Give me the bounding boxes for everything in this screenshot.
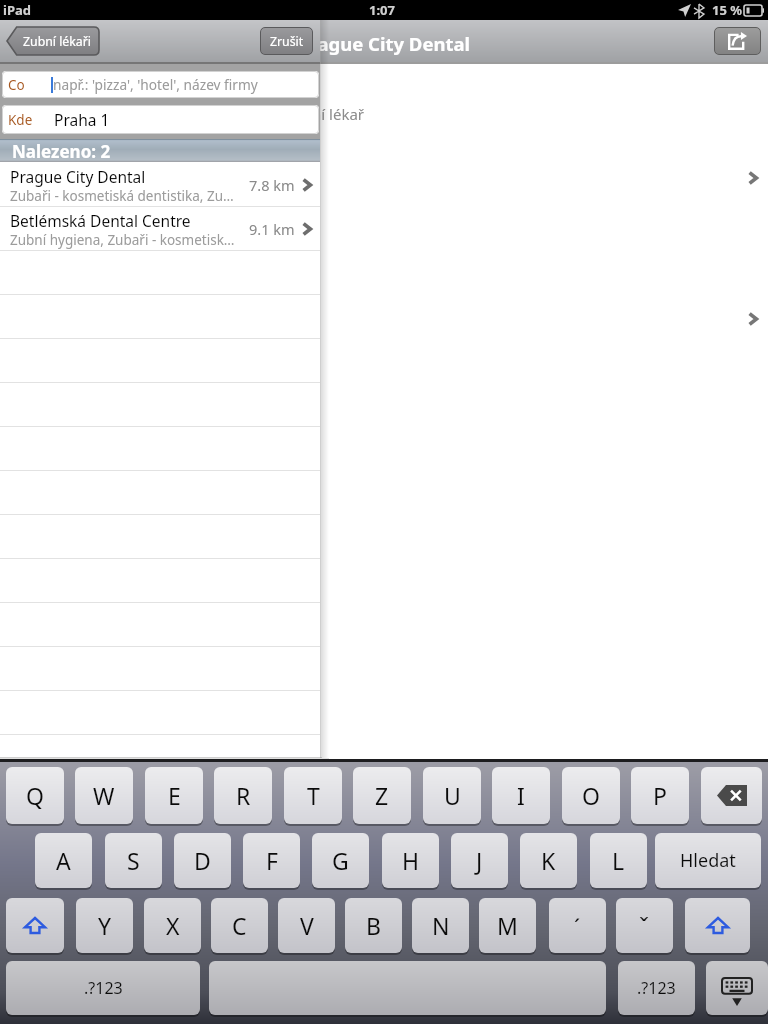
- button[interactable]: W: [75, 767, 133, 824]
- button[interactable]: D: [174, 833, 231, 888]
- staticText: iPad: [3, 1, 31, 19]
- button[interactable]: A: [35, 833, 92, 888]
- button[interactable]: Y: [76, 898, 133, 953]
- button[interactable]: N: [412, 898, 469, 953]
- button[interactable]: B: [345, 898, 402, 953]
- button[interactable]: .?123: [6, 961, 200, 1015]
- button[interactable]: Shift: [685, 898, 750, 953]
- staticText: ˇ: [639, 909, 650, 942]
- button[interactable]: [0, 251, 320, 295]
- button[interactable]: [0, 603, 320, 647]
- button[interactable]: F: [243, 833, 300, 888]
- button[interactable]: Hide keyboard: [706, 961, 768, 1015]
- button[interactable]: Z: [353, 767, 411, 824]
- button[interactable]: Betlémská Dental Centre: [0, 207, 320, 251]
- button[interactable]: C: [211, 898, 268, 953]
- button[interactable]: G: [312, 833, 369, 888]
- button[interactable]: Share: [714, 27, 761, 55]
- staticText: .?123: [637, 977, 676, 999]
- button[interactable]: ˇ: [616, 898, 673, 953]
- button[interactable]: ´: [549, 898, 606, 953]
- button[interactable]: [0, 383, 320, 427]
- staticText: L: [612, 845, 625, 876]
- button[interactable]: Co: [2, 71, 319, 98]
- staticText: Zubaři - kosmetiská dentistika, Zu…: [10, 187, 234, 205]
- button[interactable]: U: [423, 767, 481, 824]
- staticText: Q: [26, 780, 44, 811]
- staticText: Zubní lékař: [285, 104, 365, 124]
- button[interactable]: Shift: [6, 898, 64, 953]
- button[interactable]: [0, 295, 320, 339]
- button[interactable]: Q: [6, 767, 64, 824]
- button[interactable]: Zrušit: [260, 27, 313, 55]
- staticText: 7.8 km: [249, 175, 295, 195]
- button[interactable]: J: [451, 833, 508, 888]
- staticText: W: [93, 780, 115, 811]
- staticText: Nalezeno: 2: [12, 140, 111, 163]
- button[interactable]: [0, 515, 320, 559]
- staticText: C: [232, 910, 247, 941]
- staticText: I: [517, 780, 525, 811]
- staticText: F: [266, 845, 278, 876]
- staticText: M: [497, 910, 518, 941]
- button[interactable]: .?123: [618, 961, 695, 1015]
- button[interactable]: Prague City Dental: [0, 163, 320, 207]
- staticText: N: [432, 910, 450, 941]
- button[interactable]: Zubní lékaři: [7, 27, 99, 55]
- staticText: Co: [8, 76, 25, 94]
- button[interactable]: P: [631, 767, 689, 824]
- staticText: Praha 1: [54, 109, 110, 130]
- button[interactable]: [0, 691, 320, 735]
- staticText: Betlémská Dental Centre: [10, 210, 191, 231]
- staticText: Prague City Dental: [298, 31, 471, 56]
- button[interactable]: [0, 471, 320, 515]
- button[interactable]: T: [284, 767, 342, 824]
- button[interactable]: K: [520, 833, 577, 888]
- staticText: K: [541, 845, 556, 876]
- staticText: E: [168, 780, 181, 811]
- button[interactable]: [0, 559, 320, 603]
- staticText: Y: [98, 910, 112, 941]
- staticText: např.: 'pizza', 'hotel', název firmy: [53, 75, 258, 94]
- button[interactable]: I: [492, 767, 550, 824]
- button[interactable]: Open detail: [742, 307, 764, 331]
- button[interactable]: Backspace: [701, 767, 762, 824]
- button[interactable]: V: [278, 898, 335, 953]
- staticText: B: [366, 910, 381, 941]
- button[interactable]: X: [144, 898, 201, 953]
- button[interactable]: Open detail: [742, 166, 764, 190]
- staticText: R: [236, 780, 251, 811]
- staticText: Z: [375, 780, 389, 811]
- button[interactable]: H: [382, 833, 439, 888]
- button[interactable]: Hledat: [655, 833, 761, 888]
- staticText: G: [332, 845, 349, 876]
- staticText: H: [402, 845, 420, 876]
- staticText: S: [127, 845, 140, 876]
- staticText: U: [444, 780, 461, 811]
- button[interactable]: [0, 427, 320, 471]
- button[interactable]: O: [562, 767, 620, 824]
- staticText: Hledat: [680, 848, 736, 873]
- staticText: T: [307, 780, 320, 811]
- button[interactable]: S: [105, 833, 162, 888]
- staticText: X: [166, 910, 180, 941]
- staticText: Zrušit: [270, 33, 304, 50]
- button[interactable]: E: [145, 767, 203, 824]
- staticText: 1:07: [369, 1, 395, 19]
- staticText: P: [653, 780, 667, 811]
- staticText: .?123: [84, 977, 123, 999]
- button[interactable]: [0, 647, 320, 691]
- button[interactable]: L: [590, 833, 647, 888]
- button[interactable]: [0, 735, 320, 779]
- button[interactable]: M: [479, 898, 536, 953]
- staticText: 9.1 km: [249, 219, 295, 239]
- staticText: O: [582, 780, 600, 811]
- staticText: ´: [574, 911, 581, 941]
- button[interactable]: Space: [209, 961, 606, 1015]
- button[interactable]: [0, 339, 320, 383]
- staticText: Prague City Dental: [10, 166, 146, 187]
- button[interactable]: R: [214, 767, 272, 824]
- staticText: A: [56, 845, 71, 876]
- button[interactable]: Kde: [2, 105, 319, 134]
- staticText: V: [300, 910, 314, 941]
